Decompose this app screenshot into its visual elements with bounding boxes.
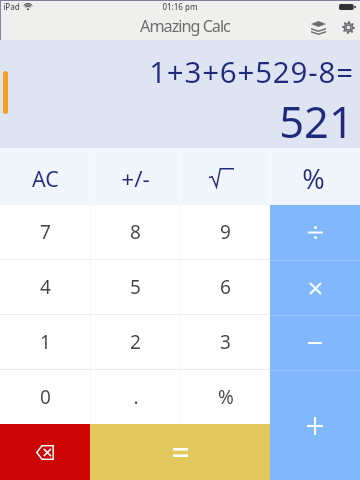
staticText: 521 [279,91,354,148]
staticText: iPad [3,1,20,12]
staticText: % [218,384,234,410]
button[interactable]: 0 [0,370,90,424]
staticText: 1+3+6+529-8= [149,51,354,91]
staticText: % [302,160,325,197]
button[interactable]: % [181,370,270,424]
staticText: 01:16 pm [162,1,198,12]
button[interactable]: 2 [91,315,180,369]
button[interactable]: Layers [302,14,334,41]
staticText: . [133,384,139,410]
staticText: 3 [220,329,231,355]
button[interactable]: 8 [91,205,180,259]
staticText: 9 [220,219,231,245]
button[interactable]: Plus [270,371,360,480]
staticText: 1 [40,329,51,355]
staticText: 4 [40,274,51,300]
button[interactable]: 5 [91,260,180,314]
button[interactable]: Settings [334,14,360,41]
button[interactable]: Divide [270,205,360,260]
staticText: 2 [130,329,141,355]
button[interactable]: 3 [181,315,270,369]
button[interactable]: . [91,370,180,424]
button[interactable]: Backspace [0,424,90,480]
button[interactable]: 7 [0,205,90,259]
staticText: +/- [121,163,150,194]
staticText: Amazing Calc [140,15,230,37]
button[interactable]: Square root [181,148,270,205]
button[interactable]: 6 [181,260,270,314]
staticText: 0 [40,384,51,410]
staticText: 6 [220,274,231,300]
button[interactable]: 1 [0,315,90,369]
staticText: 8 [130,219,141,245]
button[interactable]: +/- [91,148,180,205]
button[interactable]: % [271,148,360,205]
button[interactable]: Minus [270,316,360,370]
button[interactable]: 4 [0,260,90,314]
button[interactable]: Equals [90,424,270,480]
staticText: AC [32,164,59,193]
staticText: 7 [40,219,51,245]
button[interactable]: 9 [181,205,270,259]
button[interactable]: AC [0,148,90,205]
button[interactable]: Multiply [270,261,360,315]
staticText: 5 [130,274,141,300]
